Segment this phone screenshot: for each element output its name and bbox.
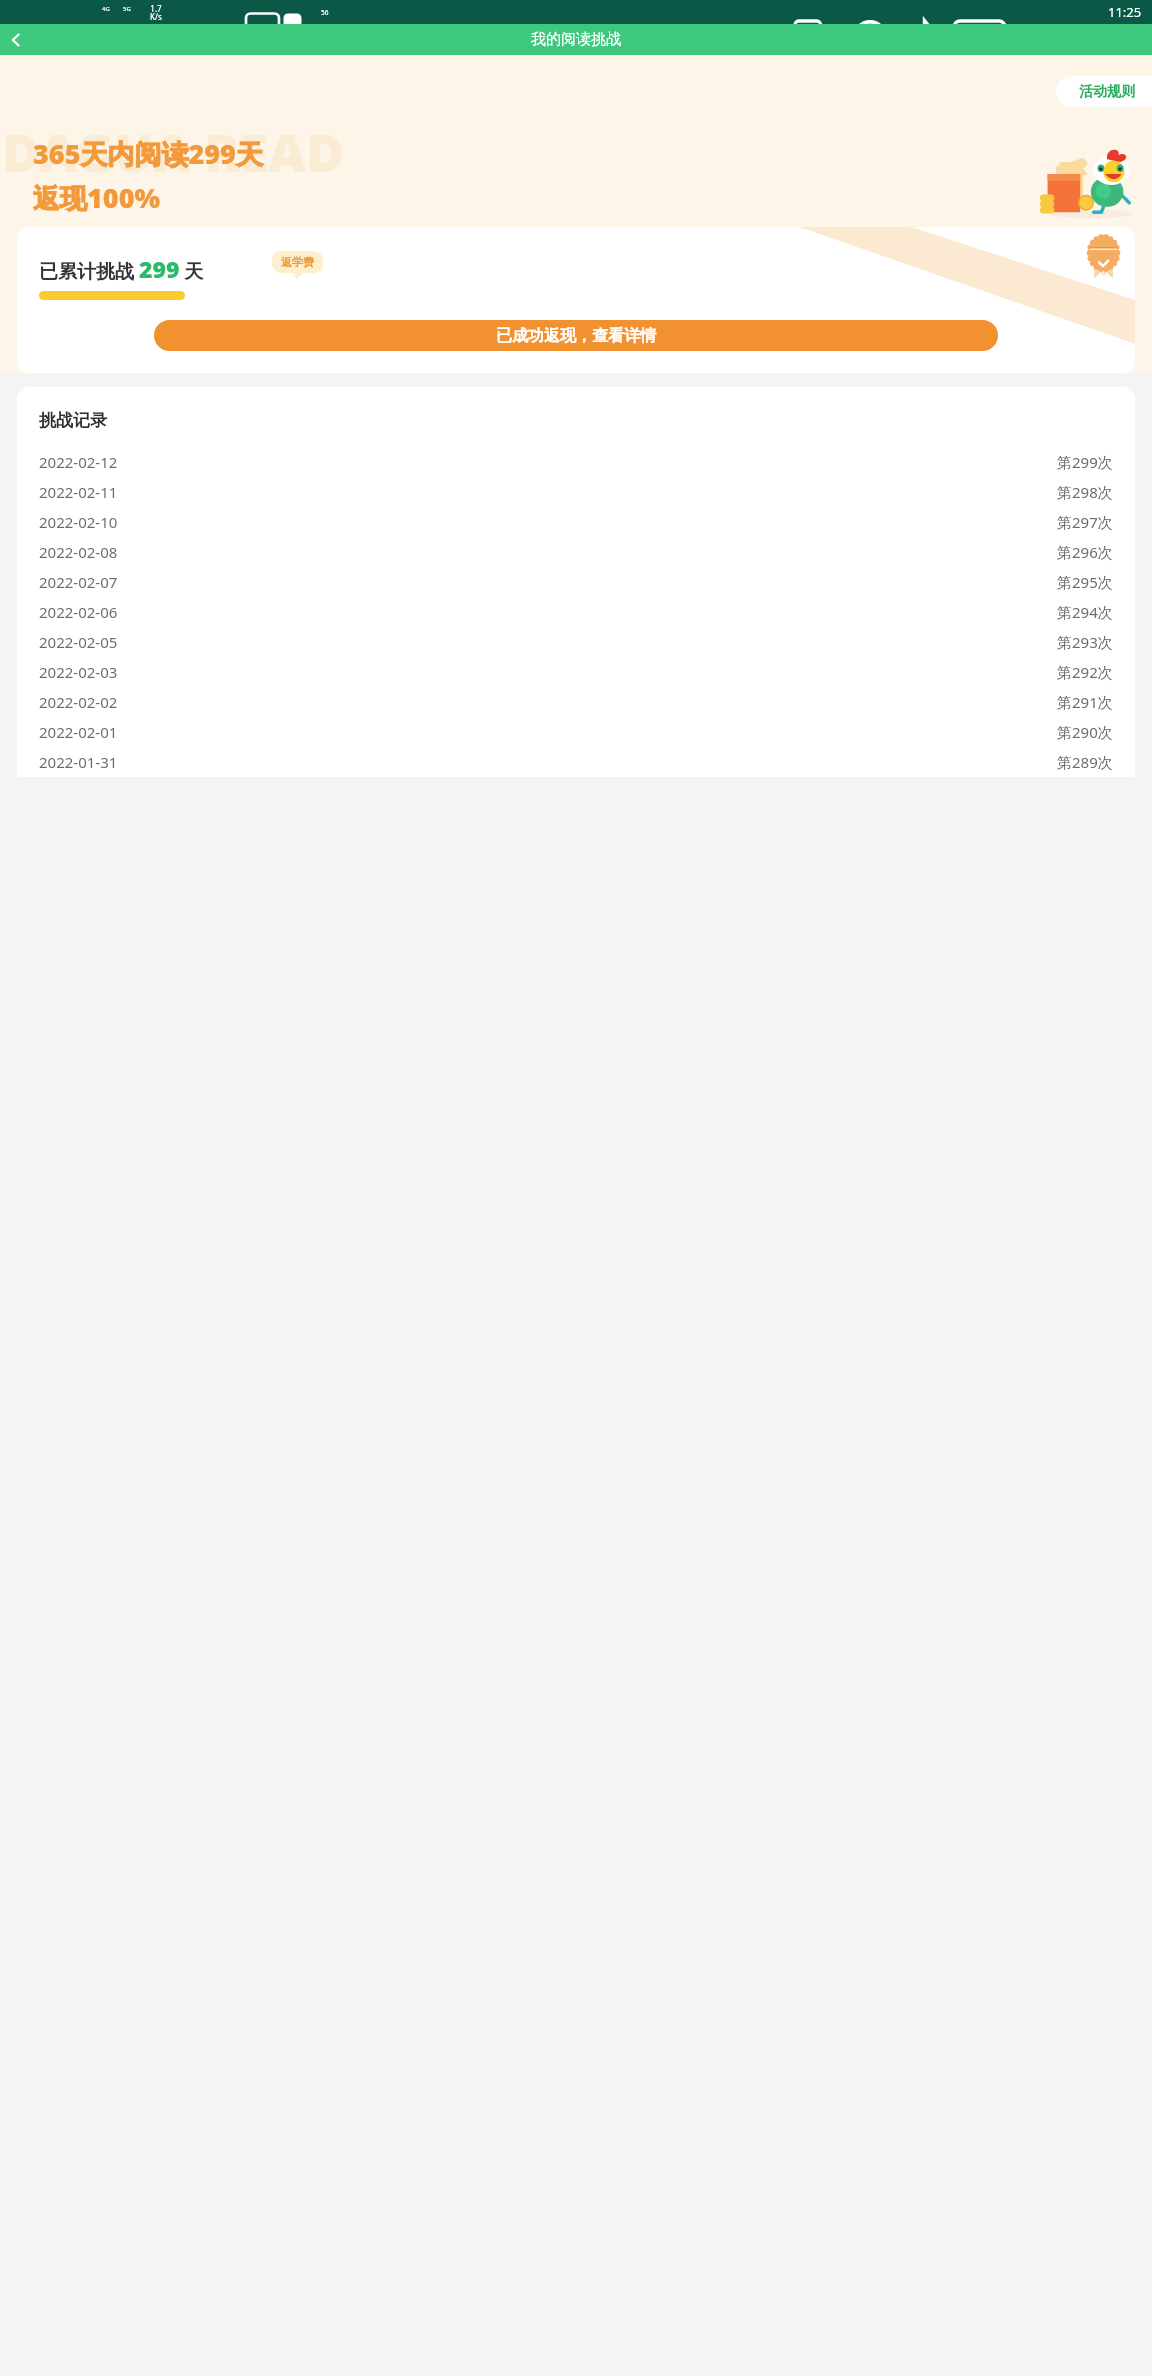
button[interactable]: 2022-02-12 [17, 447, 1135, 477]
button[interactable]: 2022-02-01 [17, 717, 1135, 747]
button[interactable]: 2022-02-08 [17, 537, 1135, 567]
staticText: 挑战记录 [39, 410, 107, 431]
staticText: 第294次 [1057, 602, 1113, 622]
staticText: 2022-02-03 [39, 662, 118, 682]
button[interactable]: 已成功返现，查看详情 [154, 320, 998, 351]
button[interactable]: 2022-02-06 [17, 597, 1135, 627]
staticText: 2022-02-01 [39, 722, 118, 742]
staticText: 第289次 [1057, 752, 1113, 772]
staticText: 已成功返现，查看详情 [496, 326, 656, 346]
button[interactable]: 活动规则 [1056, 76, 1152, 107]
staticText: 第291次 [1057, 692, 1113, 712]
staticText: 365天内阅读299天 [33, 135, 263, 172]
staticText: 第295次 [1057, 572, 1113, 592]
staticText: 活动规则 [1079, 83, 1135, 101]
staticText: 返现100% [33, 179, 161, 216]
staticText: 2022-02-12 [39, 452, 118, 472]
button[interactable]: Back [0, 24, 31, 55]
staticText: 1.7 K/s [150, 3, 162, 22]
staticText: 5G [123, 5, 131, 13]
button[interactable]: 2022-02-05 [17, 627, 1135, 657]
staticText: 11:25 [1108, 3, 1142, 21]
button[interactable]: 2022-02-10 [17, 507, 1135, 537]
staticText: 已累计挑战 299 天 [39, 253, 204, 284]
staticText: 56 [321, 8, 329, 17]
staticText: 第296次 [1057, 542, 1113, 562]
button[interactable]: 2022-02-07 [17, 567, 1135, 597]
staticText: 2022-02-05 [39, 632, 118, 652]
staticText: 我的阅读挑战 [531, 30, 621, 49]
staticText: 第293次 [1057, 632, 1113, 652]
staticText: 2022-02-08 [39, 542, 118, 562]
staticText: 2022-01-31 [39, 752, 118, 772]
staticText: 第298次 [1057, 482, 1113, 502]
staticText: 2022-02-07 [39, 572, 118, 592]
button[interactable]: 2022-02-11 [17, 477, 1135, 507]
staticText: 第290次 [1057, 722, 1113, 742]
staticText: 第297次 [1057, 512, 1113, 532]
staticText: DAGUA READ [2, 116, 345, 187]
staticText: 2022-02-02 [39, 692, 118, 712]
staticText: 第292次 [1057, 662, 1113, 682]
staticText: 2022-02-11 [39, 482, 118, 502]
button[interactable]: 2022-01-31 [17, 747, 1135, 777]
staticText: 第299次 [1057, 452, 1113, 472]
button[interactable]: 2022-02-02 [17, 687, 1135, 717]
button[interactable]: 2022-02-03 [17, 657, 1135, 687]
staticText: 2022-02-06 [39, 602, 118, 622]
staticText: 2022-02-10 [39, 512, 118, 532]
staticText: 返学费 [281, 255, 314, 269]
staticText: 4G [102, 5, 110, 13]
